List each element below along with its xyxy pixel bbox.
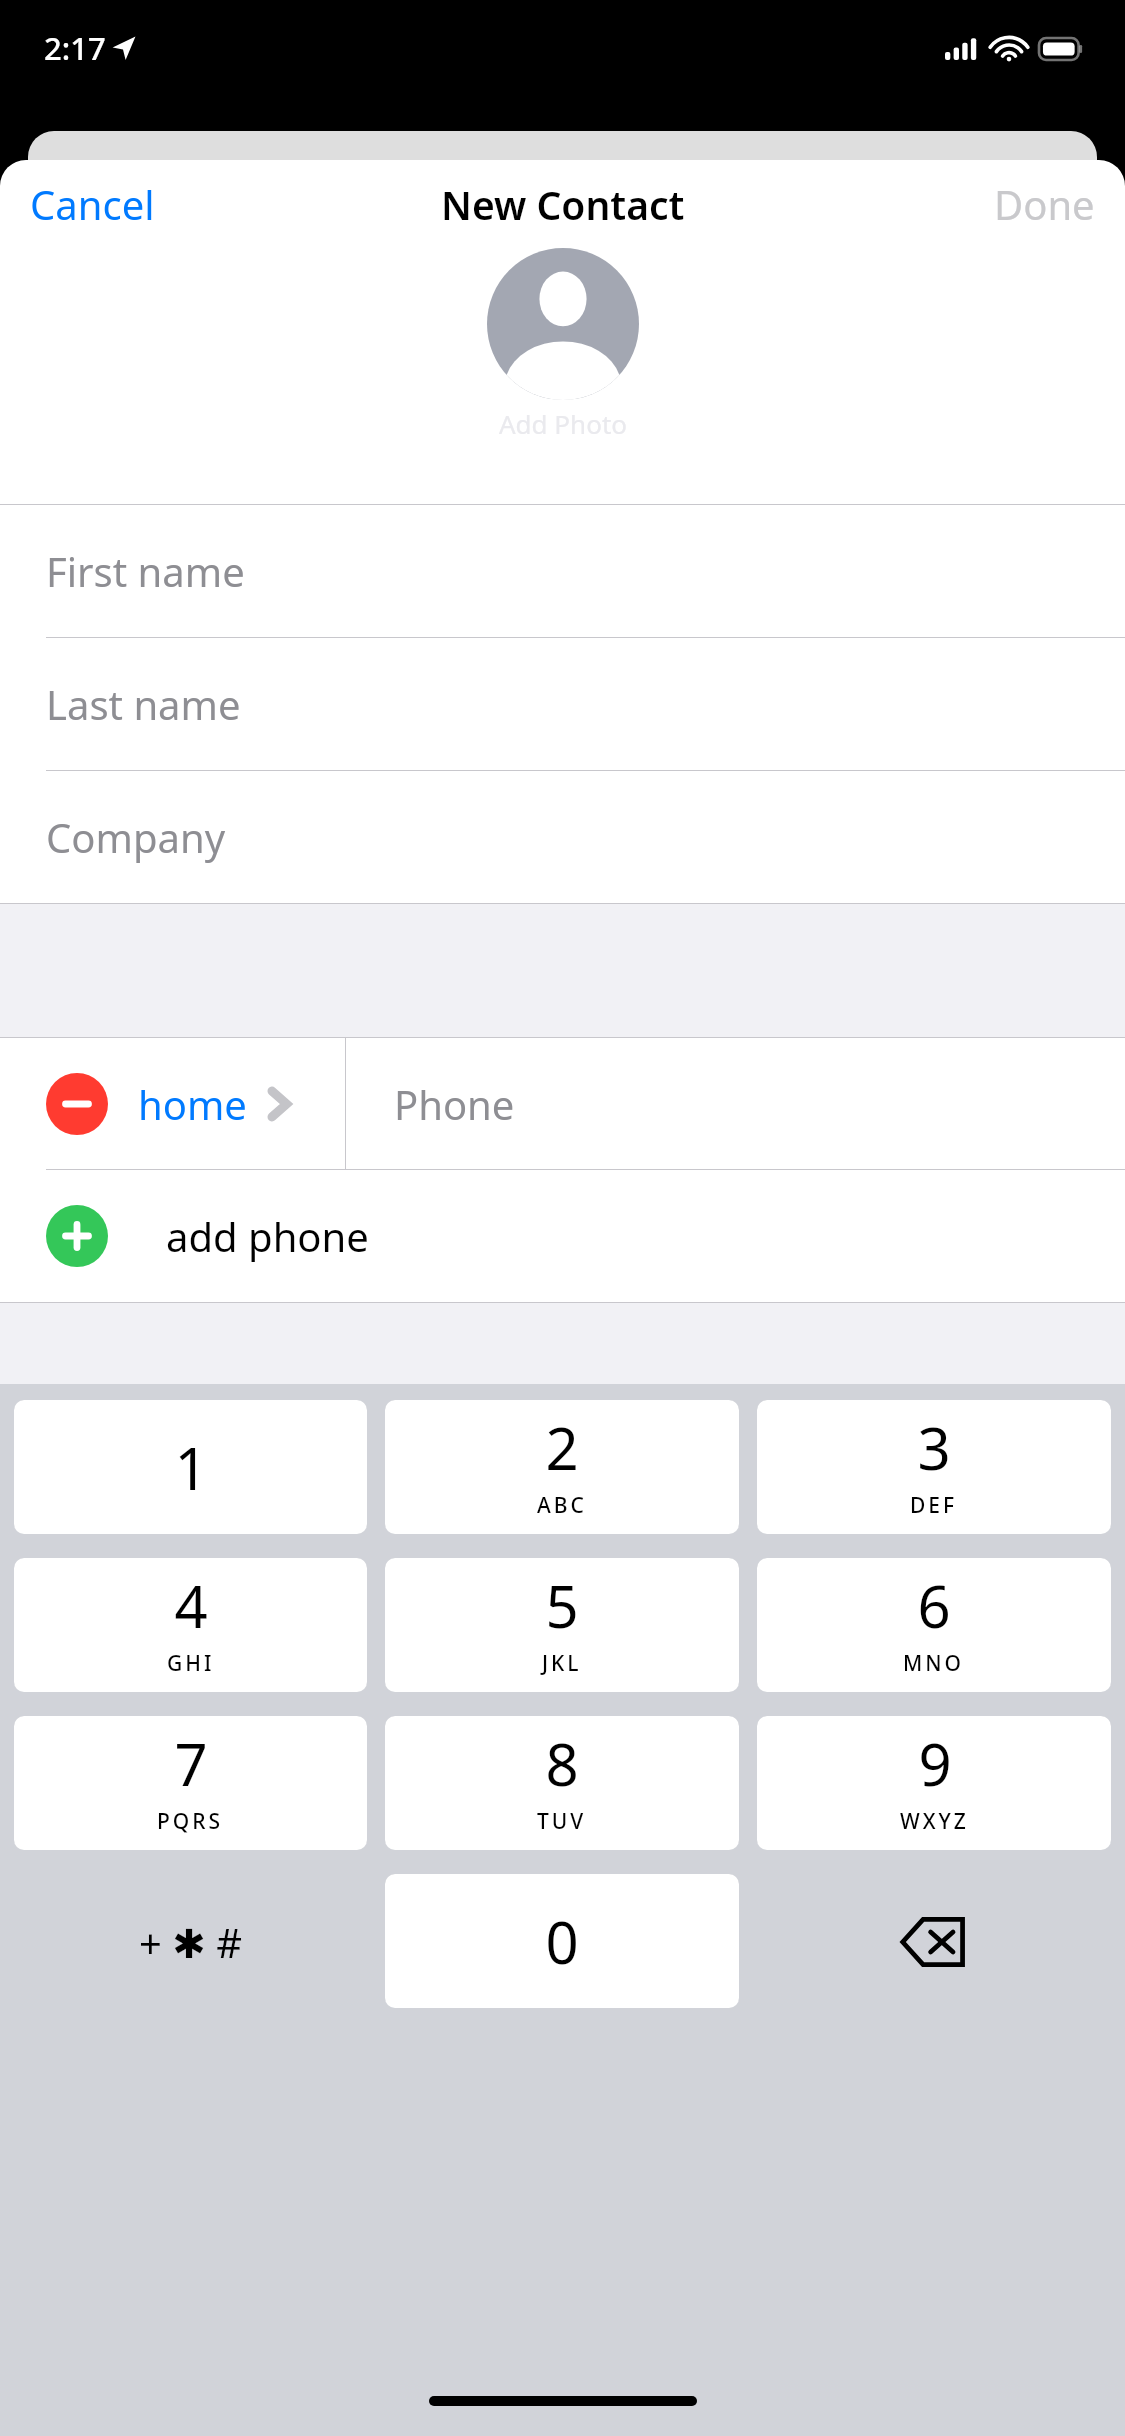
staticText: Done xyxy=(994,177,1095,231)
staticText: 4 xyxy=(174,1566,208,1645)
staticText: 1 xyxy=(174,1428,208,1507)
staticText: JKL xyxy=(542,1649,582,1678)
staticText: home xyxy=(138,1077,247,1131)
button[interactable]: 8 xyxy=(385,1716,739,1850)
button[interactable]: Done xyxy=(964,160,1125,248)
other: Remove phone xyxy=(46,1073,108,1135)
button[interactable]: 0 xyxy=(385,1874,739,2008)
staticText: 0 xyxy=(545,1902,579,1981)
staticText: 3 xyxy=(917,1408,951,1487)
staticText: Last name xyxy=(46,677,241,731)
button[interactable]: Cancel xyxy=(0,160,185,248)
button[interactable]: Phone xyxy=(346,1038,1125,1169)
staticText: GHI xyxy=(167,1649,215,1678)
button[interactable]: 1 xyxy=(14,1400,367,1534)
button[interactable]: 3 xyxy=(757,1400,1111,1534)
button[interactable]: 4 xyxy=(14,1558,367,1692)
staticText: MNO xyxy=(903,1649,965,1678)
staticText: 8 xyxy=(545,1724,579,1803)
staticText: Company xyxy=(46,810,226,864)
staticText: add phone xyxy=(166,1209,369,1263)
staticText: 6 xyxy=(917,1566,951,1645)
button[interactable]: Symbols xyxy=(14,1874,367,2010)
staticText: TUV xyxy=(537,1807,587,1836)
staticText: + ✱ # xyxy=(139,1915,243,1969)
button[interactable]: add phone xyxy=(0,1170,1125,1302)
staticText: New Contact xyxy=(441,178,685,231)
button[interactable]: 5 xyxy=(385,1558,739,1692)
staticText: 7 xyxy=(174,1724,208,1803)
staticText: DEF xyxy=(910,1491,958,1520)
staticText: Add Photo xyxy=(499,406,627,441)
button[interactable]: Delete xyxy=(757,1874,1111,2010)
staticText: 2:17 xyxy=(44,27,106,69)
button[interactable]: Add Photo xyxy=(487,248,639,400)
button[interactable]: Remove phone xyxy=(0,1038,345,1169)
staticText: Cancel xyxy=(30,177,155,231)
staticText: First name xyxy=(46,544,245,598)
staticText: 9 xyxy=(918,1724,952,1803)
staticText: WXYZ xyxy=(900,1807,969,1836)
staticText: PQRS xyxy=(157,1807,224,1836)
button[interactable]: 7 xyxy=(14,1716,367,1850)
button[interactable]: First name xyxy=(0,505,1125,637)
staticText: ABC xyxy=(537,1491,587,1520)
button[interactable]: 6 xyxy=(757,1558,1111,1692)
button[interactable]: 2 xyxy=(385,1400,739,1534)
button[interactable]: 9 xyxy=(757,1716,1111,1850)
button[interactable]: Last name xyxy=(0,638,1125,770)
staticText: 2 xyxy=(545,1408,579,1487)
button[interactable]: Company xyxy=(0,771,1125,903)
staticText: Phone xyxy=(394,1077,515,1131)
staticText: 5 xyxy=(545,1566,579,1645)
